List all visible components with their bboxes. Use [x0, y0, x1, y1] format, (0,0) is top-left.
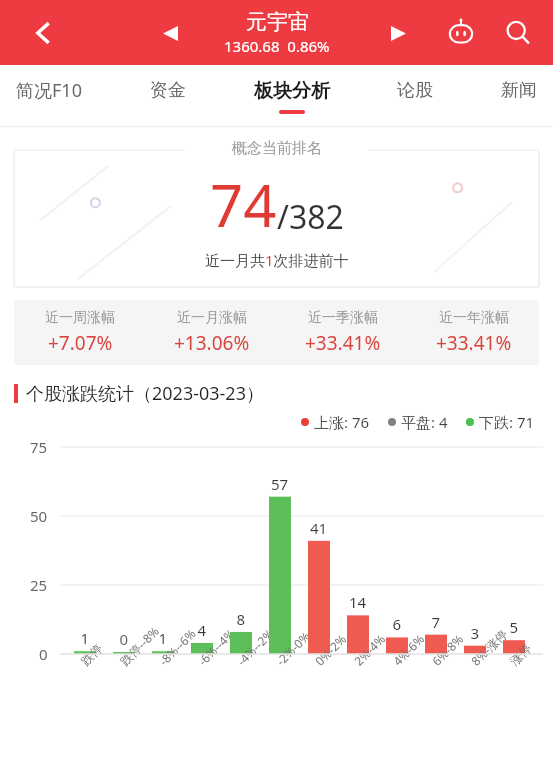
staticText: +7.07% [48, 330, 113, 356]
staticText: 简况F10 [16, 78, 82, 103]
staticText: 平盘: 4 [401, 412, 448, 432]
button[interactable]: Search [497, 12, 539, 54]
staticText: 上涨: 76 [314, 412, 370, 432]
staticText: 1360.68 0.86% [224, 36, 330, 56]
button[interactable]: 新闻 [501, 79, 537, 113]
button[interactable]: 板块分析 [254, 79, 330, 114]
staticText: 资金 [150, 79, 186, 102]
staticText: 新闻 [501, 79, 537, 102]
button[interactable]: 近一季涨幅 [277, 309, 408, 356]
button[interactable]: Assistant [441, 13, 481, 53]
staticText: 板块分析 [254, 79, 330, 103]
button[interactable]: Back [22, 11, 66, 55]
staticText: 近一年涨幅 [439, 309, 509, 327]
button[interactable]: 近一月涨幅 [146, 309, 277, 356]
staticText: 论股 [397, 79, 433, 102]
button[interactable]: 近一周涨幅 [14, 309, 146, 356]
staticText: +13.06% [174, 330, 250, 356]
staticText: /382 [277, 195, 344, 239]
staticText: 个股涨跌统计（2023-03-23） [26, 381, 264, 406]
staticText: 近一月共1次排进前十 [205, 250, 349, 270]
staticText: 近一月涨幅 [177, 309, 247, 327]
staticText: 近一周涨幅 [45, 309, 115, 327]
staticText: 概念当前排名 [232, 139, 322, 158]
staticText: 74 [210, 165, 277, 244]
button[interactable]: 资金 [150, 79, 186, 113]
staticText: 下跌: 71 [479, 412, 535, 432]
staticText: 元宇宙 [246, 9, 309, 35]
button[interactable]: 论股 [397, 79, 433, 113]
button[interactable]: Previous [152, 15, 188, 51]
button[interactable]: 近一年涨幅 [408, 309, 539, 356]
button[interactable]: 简况F10 [16, 78, 82, 114]
staticText: +33.41% [305, 330, 381, 356]
staticText: +33.41% [436, 330, 512, 356]
button[interactable]: Next [380, 15, 416, 51]
staticText: 近一季涨幅 [308, 309, 378, 327]
